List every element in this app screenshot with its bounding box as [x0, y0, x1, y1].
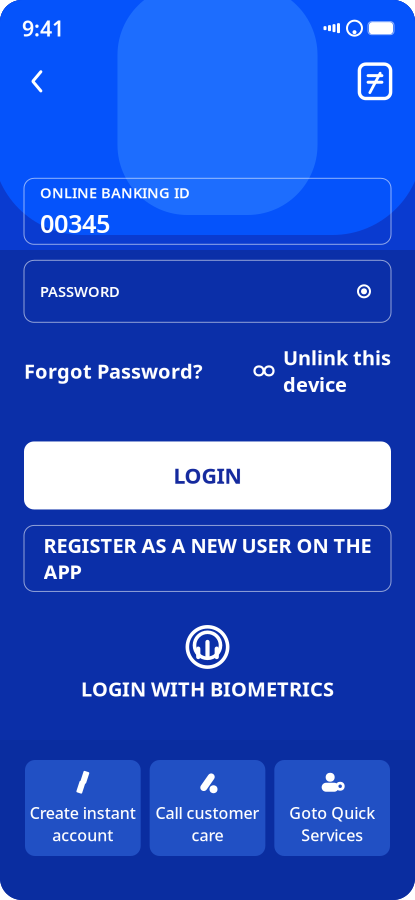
staticText: 9:41	[22, 14, 64, 42]
button[interactable]: Unlink this device	[253, 344, 391, 397]
staticText: 00345	[40, 206, 110, 240]
staticText: Call customer	[155, 802, 259, 823]
button[interactable]: Goto Quick	[274, 760, 390, 856]
button[interactable]: Back	[20, 61, 54, 101]
staticText: REGISTER AS A NEW USER ON THE APP	[43, 532, 371, 585]
staticText: Create instant	[30, 802, 136, 823]
button[interactable]: REGISTER AS A NEW USER ON THE APP	[24, 525, 391, 591]
staticText: Forgot Password?	[24, 358, 203, 384]
staticText: LOGIN	[173, 461, 241, 490]
button[interactable]: LOGIN WITH BIOMETRICS	[81, 623, 334, 702]
button[interactable]: LOGIN	[24, 441, 391, 509]
staticText: Unlink this device	[283, 344, 391, 397]
button[interactable]: Standard Bank	[355, 60, 395, 102]
staticText: account	[52, 824, 113, 846]
staticText: ONLINE BANKING ID	[40, 183, 190, 202]
staticText: LOGIN WITH BIOMETRICS	[81, 675, 334, 702]
staticText: PASSWORD	[40, 282, 120, 301]
staticText: Goto Quick	[289, 802, 375, 823]
button[interactable]: Forgot Password?	[24, 358, 203, 384]
staticText: care	[191, 824, 223, 846]
button[interactable]: Create instant	[25, 760, 141, 856]
staticText: Services	[301, 824, 363, 846]
button[interactable]: Call customer	[150, 760, 265, 856]
